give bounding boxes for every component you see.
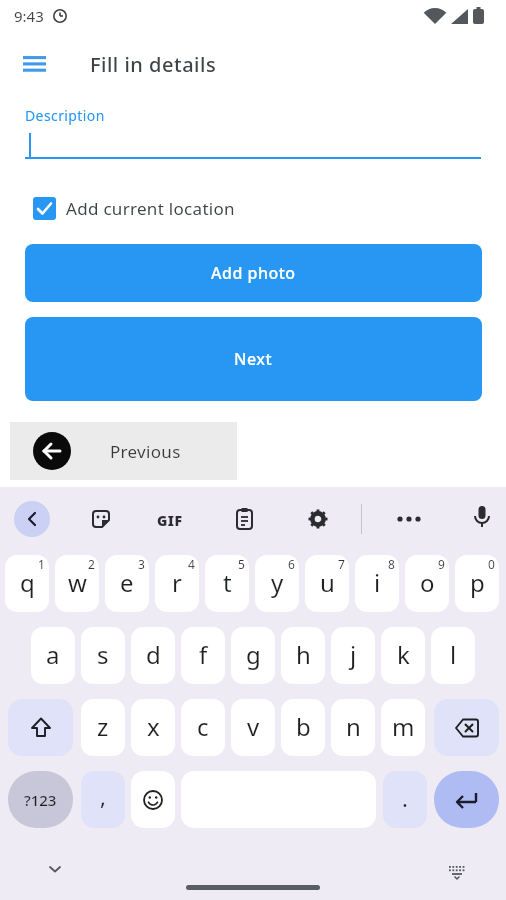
staticText: v	[247, 710, 260, 743]
staticText: w	[68, 566, 87, 599]
button[interactable]: f	[181, 627, 225, 684]
button[interactable]: z	[81, 699, 125, 756]
button[interactable]: v	[231, 699, 275, 756]
button[interactable]: c	[181, 699, 225, 756]
button[interactable]	[434, 771, 499, 828]
staticText: h	[296, 638, 311, 671]
staticText: 2	[88, 556, 95, 572]
staticText: e	[120, 566, 134, 599]
button[interactable]: e	[105, 555, 149, 612]
button[interactable]	[48, 864, 62, 874]
button[interactable]: o	[405, 555, 449, 612]
button[interactable]	[8, 699, 73, 756]
button[interactable]: r	[155, 555, 199, 612]
staticText: i	[374, 566, 381, 599]
staticText: l	[450, 638, 457, 671]
staticText: 3	[138, 556, 145, 572]
staticText: 4	[188, 556, 195, 572]
staticText: y	[271, 566, 284, 599]
button[interactable]	[23, 56, 47, 74]
button[interactable]	[235, 507, 255, 531]
staticText: x	[147, 710, 160, 743]
button[interactable]: q	[5, 555, 49, 612]
staticText: b	[296, 710, 311, 743]
button[interactable]	[472, 505, 492, 533]
button[interactable]	[14, 501, 50, 537]
button[interactable]: h	[281, 627, 325, 684]
button[interactable]: p	[455, 555, 499, 612]
staticText: .	[402, 783, 408, 813]
button[interactable]: l	[431, 627, 475, 684]
staticText: Previous	[110, 440, 181, 463]
button[interactable]: m	[381, 699, 425, 756]
button[interactable]: y	[255, 555, 299, 612]
staticText: 8	[388, 556, 395, 572]
button[interactable]: t	[205, 555, 249, 612]
button[interactable]	[434, 699, 499, 756]
button[interactable]: Next	[25, 317, 482, 401]
staticText: o	[420, 566, 435, 599]
button[interactable]: d	[131, 627, 175, 684]
staticText: k	[397, 638, 410, 671]
button[interactable]: u	[305, 555, 349, 612]
staticText: 9:43	[14, 6, 44, 26]
staticText: q	[20, 566, 35, 599]
staticText: t	[223, 566, 232, 599]
staticText: 0	[488, 556, 495, 572]
staticText: m	[392, 710, 415, 743]
staticText: Add photo	[211, 262, 296, 284]
staticText: g	[246, 638, 261, 671]
staticText: d	[146, 638, 161, 671]
button[interactable]: a	[31, 627, 75, 684]
button[interactable]: ,	[81, 771, 125, 828]
button[interactable]: x	[131, 699, 175, 756]
staticText: ?123	[24, 790, 57, 810]
staticText: z	[97, 710, 109, 743]
button[interactable]: s	[81, 627, 125, 684]
staticText: 7	[338, 556, 345, 572]
staticText: Fill in details	[90, 51, 217, 78]
staticText: Description	[25, 106, 105, 125]
button[interactable]: j	[331, 627, 375, 684]
button[interactable]	[396, 515, 422, 523]
button[interactable]: i	[355, 555, 399, 612]
staticText: ,	[100, 781, 106, 811]
button[interactable]	[131, 771, 175, 828]
staticText: 9	[438, 556, 445, 572]
button[interactable]: b	[281, 699, 325, 756]
button[interactable]: g	[231, 627, 275, 684]
button[interactable]	[447, 864, 467, 878]
button[interactable]: Add current location	[33, 197, 235, 220]
staticText: s	[97, 638, 109, 671]
button[interactable]: k	[381, 627, 425, 684]
button[interactable]: n	[331, 699, 375, 756]
staticText: Next	[234, 348, 273, 370]
staticText: j	[350, 638, 357, 671]
staticText: r	[172, 566, 182, 599]
button[interactable]: .	[383, 771, 427, 828]
staticText: f	[199, 638, 208, 671]
button[interactable]: Previous	[10, 422, 237, 480]
staticText: u	[320, 566, 335, 599]
button[interactable]: GIF	[157, 511, 183, 530]
staticText: 6	[288, 556, 295, 572]
staticText: Add current location	[66, 197, 235, 220]
staticText: c	[197, 710, 209, 743]
button[interactable]	[308, 509, 328, 529]
staticText: n	[346, 710, 361, 743]
staticText: a	[46, 638, 60, 671]
button[interactable]: ?123	[8, 771, 73, 828]
button[interactable]	[90, 508, 112, 530]
button[interactable]: Add photo	[25, 244, 482, 302]
staticText: 5	[238, 556, 245, 572]
staticText: p	[470, 566, 485, 599]
staticText: 1	[38, 556, 45, 572]
button[interactable]: w	[55, 555, 99, 612]
